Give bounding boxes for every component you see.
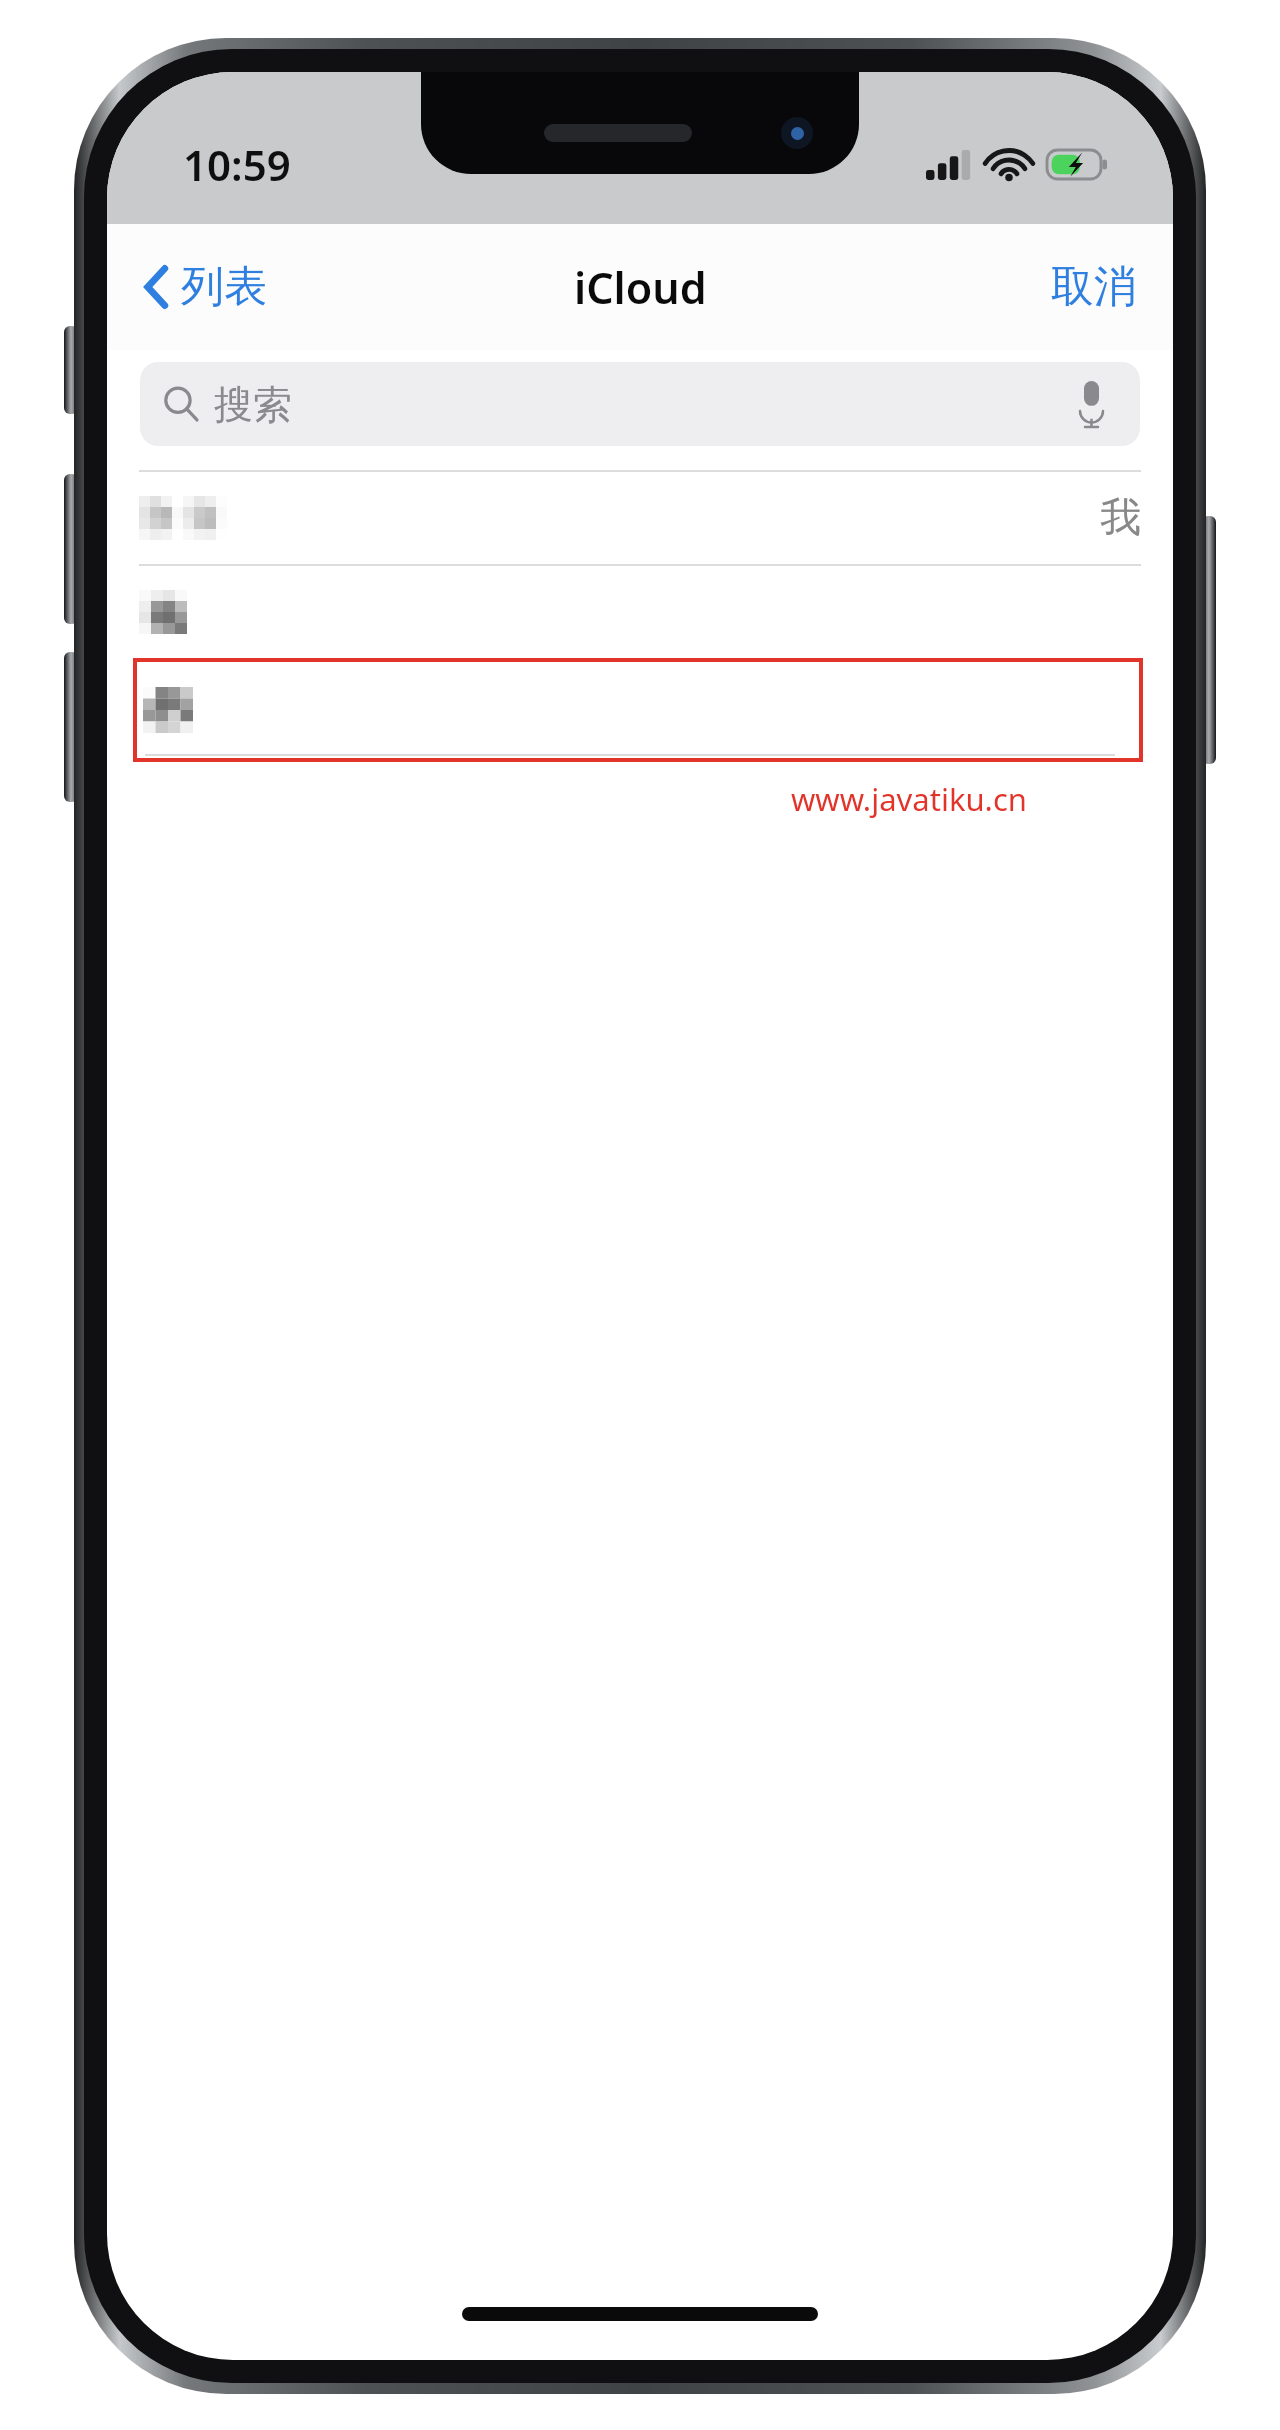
staticText: 10:59 bbox=[183, 136, 291, 193]
button[interactable] bbox=[107, 566, 1173, 658]
button[interactable]: 我 bbox=[107, 472, 1173, 564]
staticText: 列表 bbox=[181, 260, 267, 314]
staticText: iCloud bbox=[574, 258, 707, 317]
button[interactable] bbox=[133, 658, 1143, 762]
button[interactable]: 搜索 bbox=[140, 362, 1140, 446]
staticText: 我 bbox=[1100, 492, 1141, 544]
staticText: 取消 bbox=[1051, 260, 1137, 314]
button[interactable]: 取消 bbox=[1037, 248, 1151, 326]
button[interactable]: 列表 bbox=[131, 248, 281, 326]
staticText: www.javatiku.cn bbox=[791, 778, 1027, 820]
staticText: 搜索 bbox=[214, 380, 292, 429]
button[interactable]: Voice search bbox=[1064, 377, 1118, 431]
